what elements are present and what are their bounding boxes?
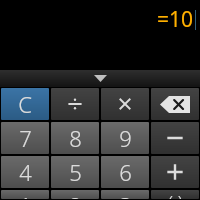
button[interactable]: Clear (1, 88, 49, 120)
button[interactable]: Eight (51, 122, 99, 154)
button[interactable]: Plus (151, 156, 199, 188)
button[interactable]: Parentheses (151, 190, 199, 199)
staticText: 8 (69, 123, 82, 153)
button[interactable]: Backspace (151, 88, 199, 120)
button[interactable]: Three (101, 190, 149, 199)
staticText: 4 (19, 157, 32, 187)
button[interactable]: 4 + 6 (0, 0, 200, 70)
staticText: 7 (19, 123, 32, 153)
staticText: 2 (69, 190, 82, 199)
staticText: ( ) (168, 190, 183, 199)
staticText: =10 (157, 5, 194, 34)
button[interactable]: Divide (51, 88, 99, 120)
staticText: 1 (19, 190, 32, 199)
staticText: 9 (119, 123, 132, 153)
button[interactable]: Five (51, 156, 99, 188)
button[interactable]: Four (1, 156, 49, 188)
staticText: 5 (69, 157, 82, 187)
button[interactable]: Two (51, 190, 99, 199)
button[interactable]: One (1, 190, 49, 199)
staticText: 3 (119, 190, 132, 199)
button[interactable]: Multiply (101, 88, 149, 120)
button[interactable]: Nine (101, 122, 149, 154)
button[interactable]: Minus (151, 122, 199, 154)
staticText: C (18, 89, 32, 119)
staticText: 6 (119, 157, 132, 187)
button[interactable]: Six (101, 156, 149, 188)
button[interactable]: Collapse keypad (0, 70, 200, 87)
button[interactable]: Seven (1, 122, 49, 154)
